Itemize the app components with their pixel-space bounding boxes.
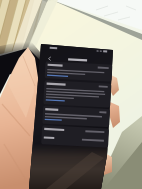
other: Battery health screen <box>0 0 142 189</box>
